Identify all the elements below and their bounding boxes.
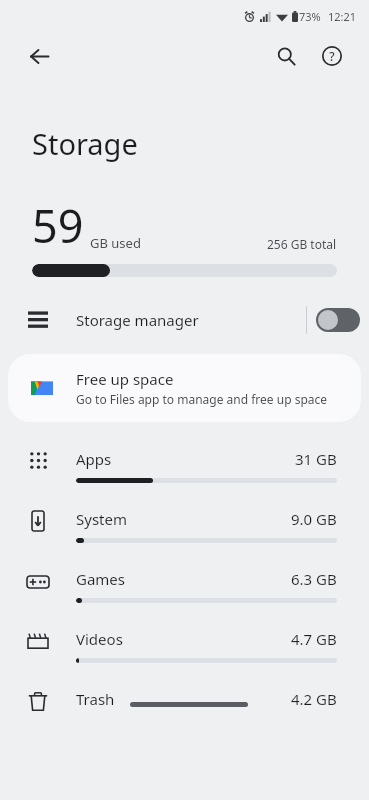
staticText: 31 GB — [295, 449, 337, 469]
button[interactable]: System — [0, 498, 369, 558]
staticText: ? — [329, 48, 335, 64]
button[interactable]: Free up space — [8, 354, 361, 422]
staticText: 4.7 GB — [291, 629, 337, 649]
staticText: Free up space — [76, 369, 174, 389]
button[interactable]: Help — [313, 37, 351, 75]
staticText: Apps — [76, 449, 112, 469]
staticText: Trash — [76, 689, 115, 709]
button[interactable]: Storage manager toggle — [307, 297, 369, 343]
staticText: 12:21 — [328, 9, 357, 24]
button[interactable]: Back — [20, 37, 58, 75]
button[interactable]: Storage manager — [0, 297, 369, 343]
button[interactable]: Games — [0, 558, 369, 618]
button[interactable]: Apps — [0, 438, 369, 498]
staticText: Videos — [76, 629, 123, 649]
button[interactable]: Videos — [0, 618, 369, 678]
staticText: Storage manager — [76, 310, 199, 330]
staticText: 73% — [299, 9, 321, 24]
staticText: System — [76, 509, 127, 529]
staticText: Go to Files app to manage and free up sp… — [76, 391, 328, 407]
button[interactable]: Trash — [0, 678, 369, 724]
staticText: 6.3 GB — [291, 569, 337, 589]
staticText: 9.0 GB — [291, 509, 337, 529]
button[interactable]: Search — [267, 37, 305, 75]
staticText: GB used — [90, 234, 141, 252]
staticText: Games — [76, 569, 126, 589]
staticText: Storage — [32, 124, 138, 163]
staticText: 59 — [32, 195, 84, 256]
staticText: 4.2 GB — [291, 689, 337, 709]
staticText: 256 GB total — [267, 236, 337, 252]
